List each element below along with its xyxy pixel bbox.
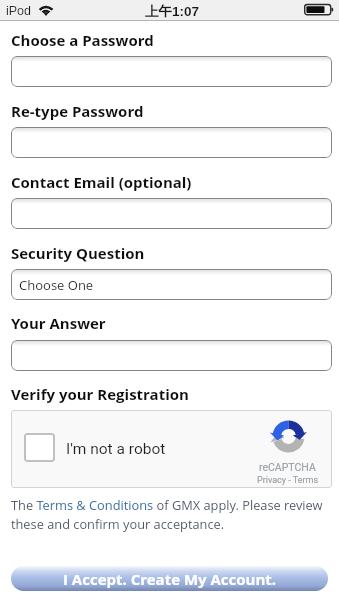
staticText: Re-type Password [11,101,144,121]
staticText: I Accept. Create My Account. [63,569,277,589]
button[interactable]: input field [11,56,332,87]
button[interactable]: input field [11,198,332,229]
button[interactable]: I Accept. Create My Account. [11,566,328,591]
staticText: Verify your Registration [11,384,189,404]
button[interactable]: input field [11,269,332,300]
staticText: Contact Email (optional) [11,172,192,192]
staticText: The Terms & Conditions of GMX apply. Ple… [11,495,336,533]
staticText: iPod [6,4,32,18]
staticText: Choose a Password [11,30,154,50]
staticText: Security Question [11,243,145,263]
button[interactable]: input field [11,127,332,158]
staticText: Privacy - Terms [257,475,319,486]
staticText: Choose One [19,276,94,294]
staticText: 上午1:07 [145,3,200,20]
staticText: reCAPTCHA [259,461,316,473]
button[interactable]: input field [11,340,332,371]
button[interactable]: I'm not a robot checkbox [24,433,55,462]
staticText: I'm not a robot [66,440,166,458]
staticText: Your Answer [11,313,106,333]
